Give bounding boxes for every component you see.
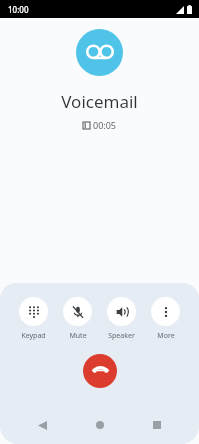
button[interactable]: End call — [83, 354, 117, 388]
button[interactable]: More — [149, 297, 182, 341]
staticText: More — [157, 331, 175, 341]
staticText: Keypad — [21, 331, 46, 341]
staticText: Mute — [69, 331, 87, 341]
staticText: Voicemail — [61, 90, 138, 113]
button[interactable]: Keypad — [17, 297, 50, 341]
staticText: 10:00 — [8, 4, 29, 15]
staticText: Speaker — [108, 331, 135, 341]
button[interactable]: Recent apps — [141, 409, 173, 441]
button[interactable]: Speaker — [105, 297, 138, 341]
button[interactable]: Back — [26, 409, 58, 441]
button[interactable]: Home — [84, 409, 116, 441]
button[interactable]: Mute — [61, 297, 94, 341]
staticText: 00:05 — [93, 119, 117, 131]
